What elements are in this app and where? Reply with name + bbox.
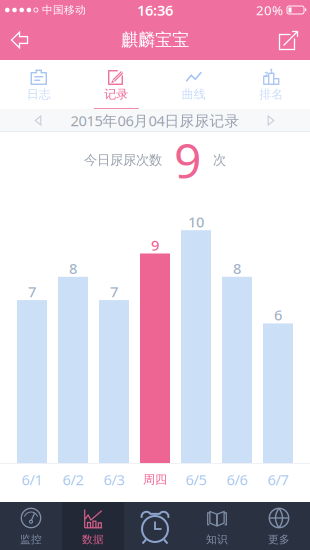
staticText: 9 bbox=[151, 235, 159, 255]
staticText: 日志 bbox=[27, 87, 51, 102]
staticText: 麒麟宝宝 bbox=[121, 29, 189, 51]
staticText: 数据 bbox=[82, 533, 104, 546]
button[interactable]: 监控 bbox=[0, 502, 62, 550]
staticText: 9 bbox=[174, 128, 201, 192]
staticText: 8 bbox=[69, 259, 77, 278]
staticText: 监控 bbox=[20, 533, 42, 546]
staticText: 曲线 bbox=[182, 87, 206, 102]
staticText: 6/5 bbox=[185, 470, 206, 489]
staticText: 6/6 bbox=[226, 470, 247, 489]
staticText: 6/1 bbox=[21, 470, 42, 489]
staticText: 2 bbox=[264, 70, 268, 79]
button[interactable]: 曲线 bbox=[155, 60, 232, 109]
staticText: 20% bbox=[256, 1, 283, 19]
staticText: 6/2 bbox=[62, 470, 83, 489]
staticText: 1 bbox=[269, 67, 273, 76]
staticText: 中国移动 bbox=[42, 3, 86, 16]
staticText: 16:36 bbox=[137, 0, 173, 20]
button[interactable]: 日志 bbox=[0, 60, 77, 109]
button[interactable]: 知识 bbox=[186, 502, 248, 550]
staticText: 排名 bbox=[259, 87, 283, 102]
staticText: 6/7 bbox=[267, 470, 288, 489]
button[interactable]: 记录闹钟 bbox=[124, 502, 186, 550]
staticText: 知识 bbox=[206, 533, 228, 546]
button[interactable]: 更多 bbox=[248, 502, 310, 550]
staticText: 7 bbox=[28, 282, 36, 301]
staticText: 更多 bbox=[268, 533, 290, 546]
button[interactable]: 记录 bbox=[77, 60, 155, 109]
staticText: 周四 bbox=[143, 472, 167, 487]
staticText: 6 bbox=[274, 305, 282, 325]
button[interactable]: 2 bbox=[232, 60, 310, 109]
button[interactable]: Back bbox=[0, 22, 29, 58]
staticText: 10 bbox=[188, 212, 204, 231]
staticText: 今日尿尿次数 bbox=[84, 152, 162, 168]
button[interactable]: Previous day bbox=[0, 109, 43, 132]
button[interactable]: 数据 bbox=[62, 502, 124, 550]
staticText: 7 bbox=[110, 282, 118, 301]
staticText: 记录 bbox=[104, 87, 128, 102]
staticText: 6/3 bbox=[103, 470, 124, 489]
button[interactable]: Share bbox=[278, 21, 310, 59]
staticText: 次 bbox=[213, 152, 226, 168]
staticText: 2015年06月04日尿尿记录 bbox=[70, 111, 239, 130]
button[interactable]: Next day bbox=[267, 109, 310, 132]
staticText: 8 bbox=[233, 259, 241, 278]
